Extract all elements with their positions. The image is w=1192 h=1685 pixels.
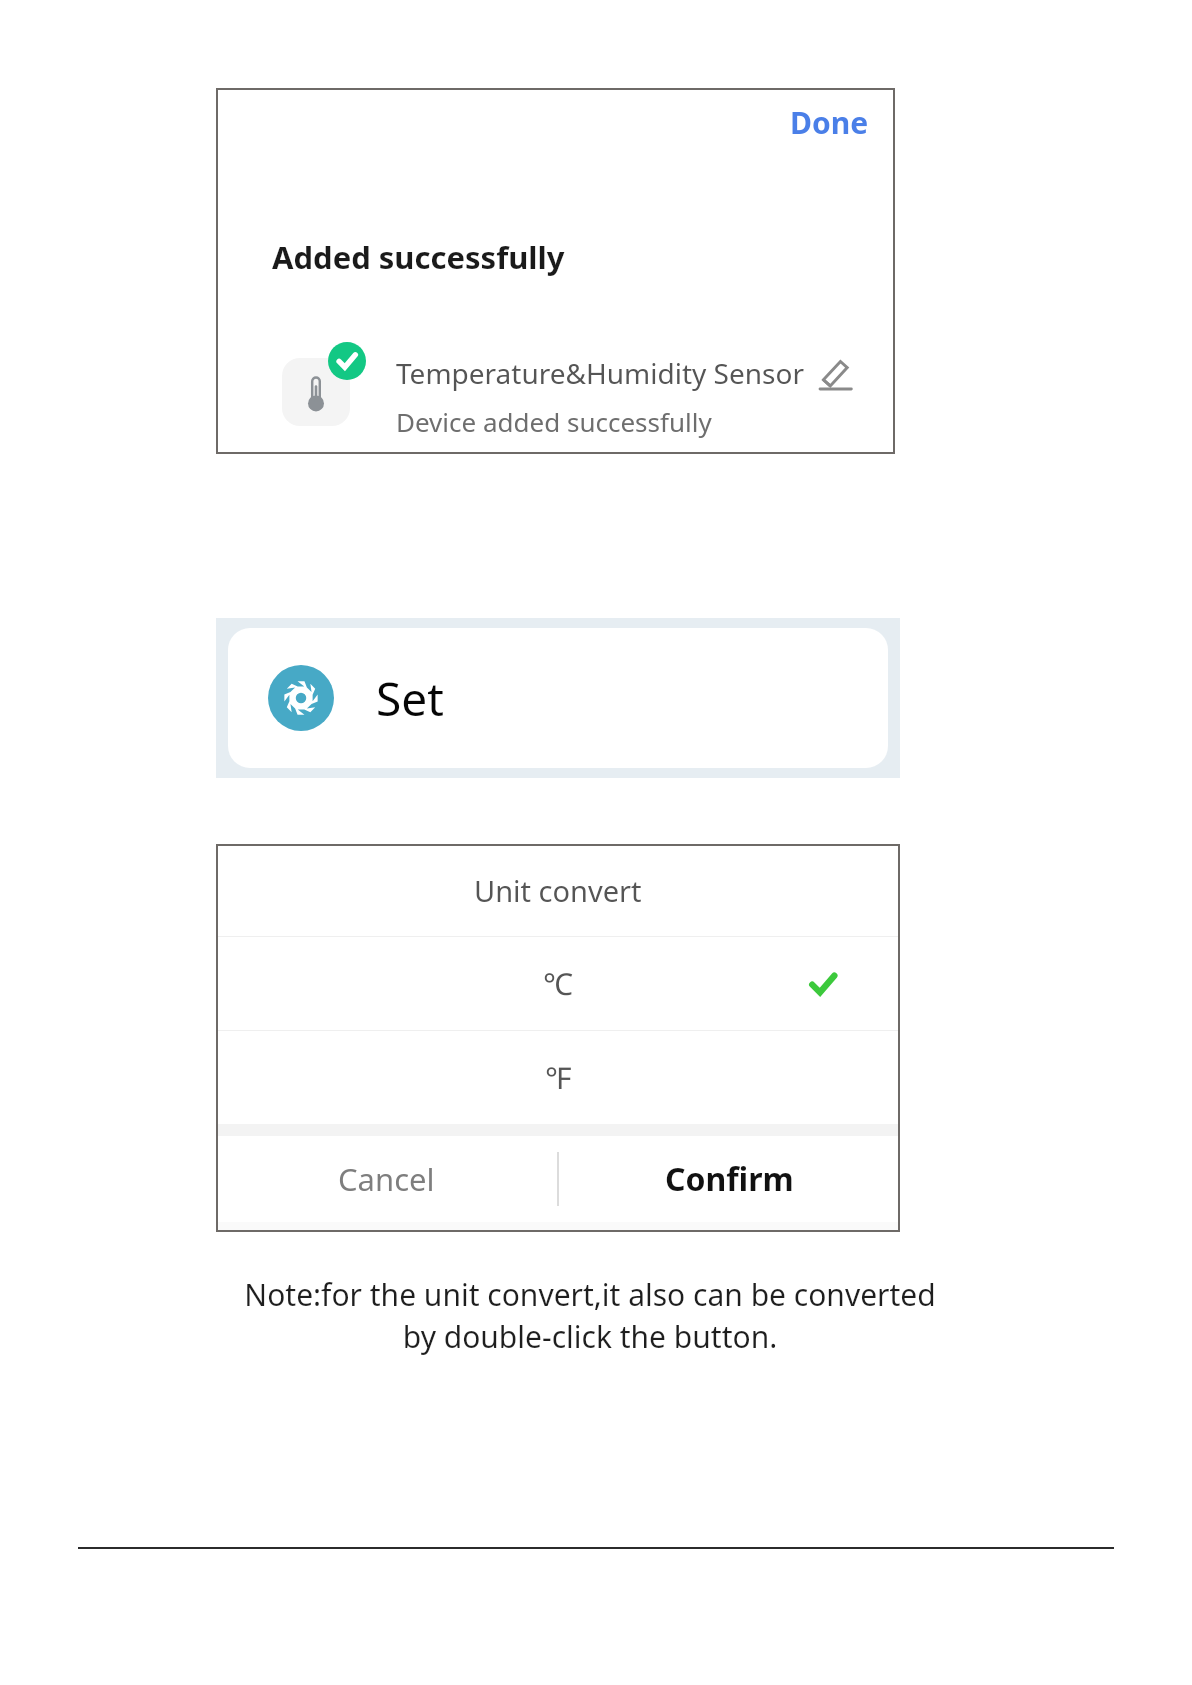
button[interactable]: Done	[790, 88, 895, 143]
staticText: Device added successfully	[396, 404, 712, 439]
staticText: Confirm	[665, 1157, 794, 1201]
staticText: Temperature&Humidity Sensor	[396, 354, 804, 392]
staticText: Note:for the unit convert,it also can be…	[228, 1274, 952, 1357]
button[interactable]: Confirm	[559, 1136, 900, 1222]
button[interactable]: Cancel	[216, 1136, 557, 1222]
staticText: ℉	[545, 1057, 572, 1098]
staticText: Set	[376, 667, 444, 730]
staticText: Unit convert	[474, 871, 642, 910]
button[interactable]: ℃	[216, 937, 900, 1030]
button[interactable]: Temperature&Humidity Sensor	[216, 342, 895, 439]
staticText: Cancel	[338, 1158, 435, 1200]
staticText: ℃	[543, 963, 573, 1004]
button[interactable]: Rename device	[818, 356, 852, 390]
button[interactable]: ℉	[216, 1031, 900, 1124]
staticText: Added successfully	[272, 236, 565, 278]
button[interactable]: Set	[228, 628, 888, 768]
